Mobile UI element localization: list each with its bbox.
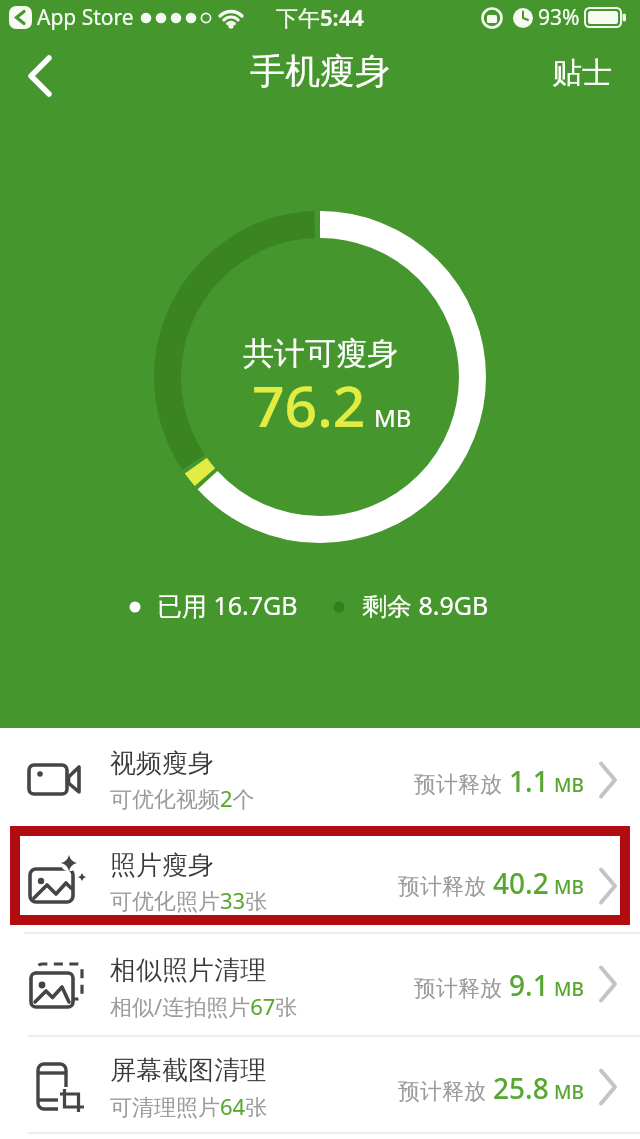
staticText: MB (374, 401, 412, 434)
staticText: 93% (538, 3, 580, 32)
button[interactable]: 照片瘦身 (0, 833, 640, 933)
staticText: 1.1 (509, 762, 549, 800)
staticText: 可清理照片64张 (110, 1091, 268, 1121)
staticText: 预计释放 (398, 1078, 486, 1106)
button[interactable]: 贴士 (540, 48, 628, 102)
staticText: 76.2 (252, 366, 366, 444)
staticText: 共计可瘦身 (243, 334, 398, 373)
staticText: 可优化照片33张 (110, 885, 268, 915)
button[interactable]: 屏幕截图清理 (0, 1036, 640, 1139)
staticText: 预计释放 (398, 873, 486, 901)
staticText: 预计释放 (414, 975, 502, 1003)
staticText: 下午5:44 (276, 2, 364, 32)
staticText: 相似照片清理 (110, 954, 266, 987)
staticText: 40.2 (493, 864, 549, 902)
staticText: 9.1 (509, 966, 549, 1004)
staticText: 照片瘦身 (110, 849, 214, 882)
staticText: 剩余 8.9GB (362, 588, 489, 622)
staticText: MB (554, 976, 584, 1002)
staticText: 预计释放 (414, 771, 502, 799)
staticText: App Store (37, 3, 134, 32)
staticText: 可优化视频2个 (110, 783, 255, 813)
button[interactable] (14, 44, 70, 104)
staticText: MB (554, 772, 584, 798)
button[interactable]: 相似照片清理 (0, 933, 640, 1036)
staticText: MB (554, 874, 584, 900)
button[interactable]: 视频瘦身 (0, 728, 640, 833)
staticText: 视频瘦身 (110, 747, 214, 780)
staticText: 25.8 (493, 1069, 549, 1107)
staticText: 贴士 (552, 54, 612, 92)
staticText: MB (554, 1079, 584, 1105)
staticText: 相似/连拍照片67张 (110, 991, 298, 1021)
staticText: 已用 16.7GB (157, 588, 298, 622)
staticText: 手机瘦身 (250, 49, 390, 93)
staticText: 屏幕截图清理 (110, 1054, 266, 1087)
